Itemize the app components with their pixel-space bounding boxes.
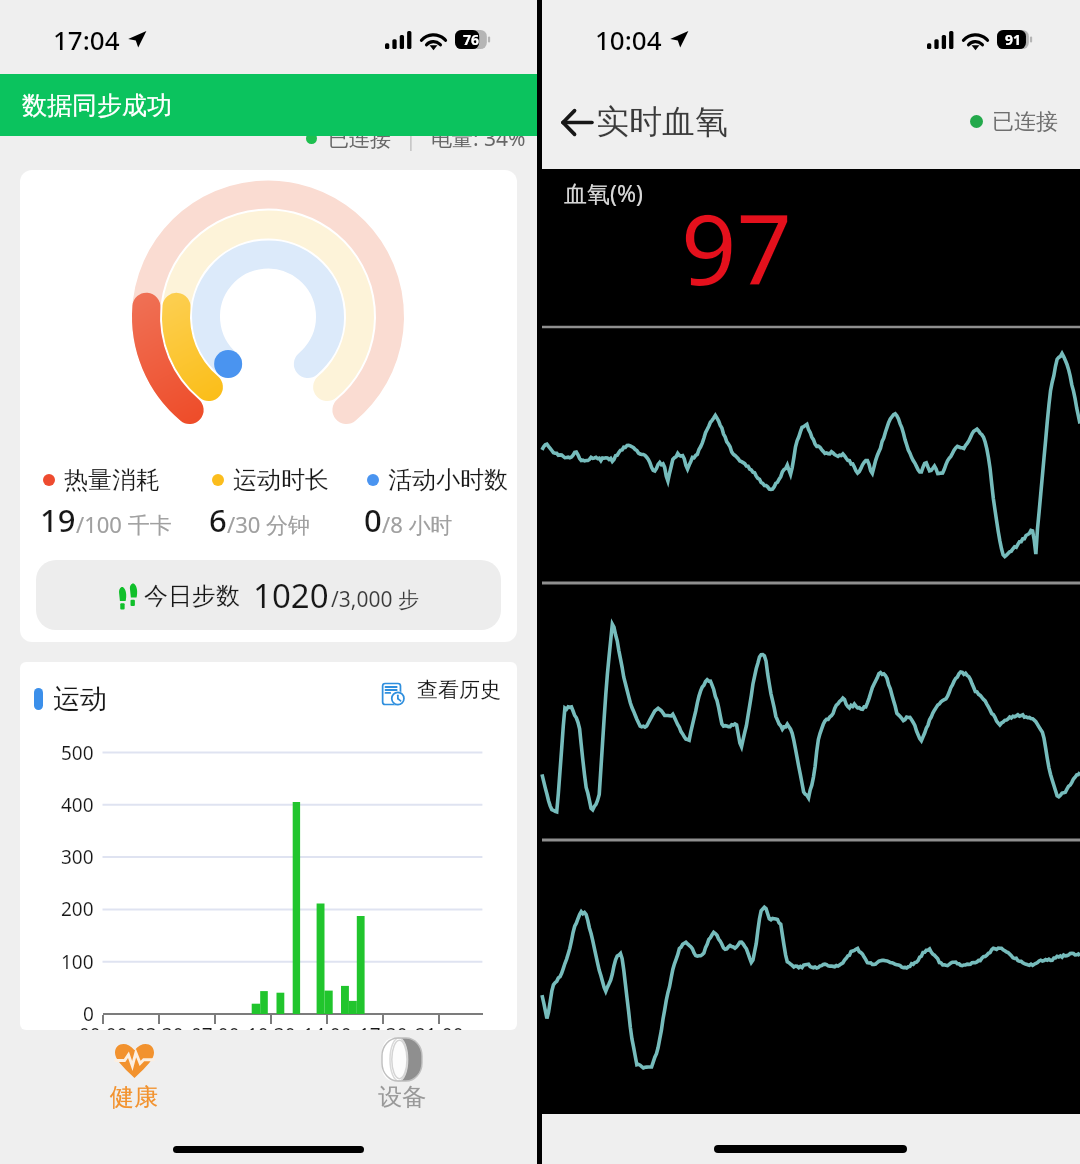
staticText: 电量: 34%	[431, 124, 526, 153]
staticText: 400	[61, 792, 94, 818]
staticText: 0	[364, 499, 382, 541]
staticText: 血氧(%)	[564, 177, 643, 208]
staticText: 设备	[378, 1082, 426, 1112]
staticText: 6	[209, 499, 227, 541]
staticText: /3,000 步	[331, 585, 419, 614]
staticText: 运动时长	[233, 465, 329, 495]
staticText: /100 千卡	[76, 509, 172, 539]
staticText: 活动小时数	[388, 465, 508, 495]
staticText: 07:00	[191, 1022, 240, 1030]
button[interactable]: 设备	[342, 1038, 462, 1112]
staticText: 已连接	[992, 108, 1058, 136]
staticText: 0	[83, 1001, 94, 1027]
staticText: 500	[61, 740, 94, 766]
staticText: 10:30	[247, 1022, 296, 1030]
button[interactable]: Back	[553, 98, 601, 146]
staticText: 已连接	[328, 126, 391, 152]
staticText: 健康	[110, 1082, 158, 1112]
staticText: 17:04	[53, 22, 120, 57]
staticText: |	[405, 124, 417, 153]
staticText: 91	[1005, 30, 1022, 49]
staticText: 21:00	[415, 1022, 464, 1030]
staticText: 热量消耗	[64, 465, 160, 495]
staticText: 03:30	[135, 1022, 184, 1030]
button[interactable]: 查看历史	[380, 676, 501, 704]
button[interactable]: 今日步数	[36, 560, 501, 630]
staticText: 查看历史	[417, 677, 501, 703]
staticText: 智能手环	[22, 104, 134, 139]
staticText: /8 小时	[382, 509, 453, 539]
staticText: 97	[681, 181, 792, 313]
staticText: 76	[463, 30, 480, 49]
staticText: 19	[40, 499, 76, 541]
button[interactable]: 健康	[74, 1042, 194, 1112]
staticText: 300	[61, 844, 94, 870]
staticText: /30 分钟	[227, 509, 311, 539]
staticText: 10:04	[595, 22, 662, 57]
staticText: 运动	[53, 682, 107, 716]
staticText: 100	[61, 949, 94, 975]
staticText: 数据同步成功	[22, 90, 172, 121]
staticText: 实时血氧	[596, 101, 728, 143]
staticText: 1020	[253, 573, 329, 618]
staticText: 200	[61, 896, 94, 922]
staticText: 14:00	[303, 1022, 352, 1030]
staticText: 00:00	[79, 1022, 128, 1030]
staticText: 17:30	[359, 1022, 408, 1030]
staticText: 今日步数	[144, 581, 240, 611]
